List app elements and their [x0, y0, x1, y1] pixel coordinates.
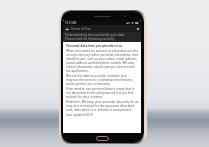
staticText: If we need to use personal data in a way… — [66, 87, 139, 99]
button[interactable]: Close — [136, 27, 140, 31]
button[interactable]: Back — [63, 25, 141, 32]
staticText: We use this data to provide, maintain an… — [66, 74, 139, 86]
button[interactable]: Back — [65, 27, 69, 31]
staticText: Retention. We keep your personal data on… — [66, 100, 139, 112]
button[interactable]: Home — [96, 136, 109, 141]
staticText: 10:21 AM — [65, 21, 77, 25]
staticText: When you create an account or otherwise … — [66, 49, 139, 73]
staticText: Last updated 2019 — [66, 113, 93, 117]
staticText: Personal data that you provide to us — [66, 44, 122, 48]
staticText: Terms of Use — [71, 27, 91, 31]
staticText: Understanding how we handle your data Pl… — [65, 33, 125, 41]
